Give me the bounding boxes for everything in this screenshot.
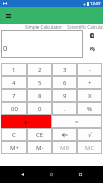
button[interactable]: M+ — [1, 141, 27, 154]
staticText: 5 — [38, 79, 42, 87]
button[interactable]: Backspace — [52, 128, 77, 141]
staticText: - — [89, 66, 91, 74]
staticText: M- — [36, 144, 44, 152]
staticText: M+ — [10, 144, 19, 152]
staticText: + — [23, 116, 29, 128]
button[interactable]: Home — [37, 166, 66, 183]
staticText: 0 — [3, 43, 8, 53]
button[interactable]: Scientific Calculator — [67, 24, 103, 30]
staticText: 7 — [12, 92, 16, 100]
staticText: 2 — [38, 66, 42, 74]
button[interactable]: 1 — [1, 63, 27, 76]
staticText: 00 — [11, 105, 18, 113]
button[interactable]: MC — [77, 141, 102, 154]
staticText: MR — [60, 144, 70, 152]
button[interactable]: + — [77, 76, 102, 89]
staticText: MC — [85, 144, 95, 152]
staticText: % — [87, 105, 92, 113]
staticText: 0 — [38, 105, 42, 113]
button[interactable]: C — [1, 128, 27, 141]
button[interactable]: X — [77, 89, 102, 102]
staticText: 3 — [63, 66, 67, 74]
button[interactable]: M- — [27, 141, 52, 154]
button[interactable]: √ — [77, 128, 102, 141]
staticText: = — [75, 118, 79, 126]
staticText: C — [12, 131, 16, 139]
button[interactable]: MR — [52, 141, 77, 154]
button[interactable]: . — [52, 102, 77, 115]
button[interactable]: 3 — [52, 63, 77, 76]
button[interactable]: CE — [27, 128, 52, 141]
button[interactable]: 6 — [52, 76, 77, 89]
button[interactable]: % — [77, 102, 102, 115]
staticText: 9 — [63, 92, 67, 100]
staticText: 4 — [12, 79, 16, 87]
staticText: . — [64, 105, 66, 113]
button[interactable]: 2 — [27, 63, 52, 76]
button[interactable]: History — [86, 43, 98, 55]
button[interactable]: 5 — [27, 76, 52, 89]
button[interactable]: Back — [8, 166, 37, 183]
button[interactable]: 9 — [52, 89, 77, 102]
button[interactable]: 8 — [27, 89, 52, 102]
button[interactable]: = — [51, 115, 102, 128]
staticText: Simple Calculator — [25, 24, 62, 30]
button[interactable]: 00 — [1, 102, 27, 115]
button[interactable]: 4 — [1, 76, 27, 89]
button[interactable]: Simple Calculator — [19, 24, 67, 30]
staticText: √ — [88, 131, 92, 138]
staticText: X — [88, 92, 92, 100]
staticText: + — [88, 79, 92, 87]
button[interactable]: Open navigation menu — [1, 9, 15, 23]
staticText: 8 — [38, 92, 42, 100]
button[interactable]: 0 — [27, 102, 52, 115]
button[interactable]: Recent apps — [66, 166, 95, 183]
button[interactable]: 7 — [1, 89, 27, 102]
staticText: 6 — [63, 79, 67, 87]
staticText: 1 — [12, 66, 16, 74]
button[interactable]: 0 — [1, 30, 83, 58]
staticText: 12:07 — [90, 1, 101, 7]
button[interactable]: + — [1, 115, 51, 128]
button[interactable]: - — [77, 63, 102, 76]
staticText: Scientific Calculator — [67, 24, 103, 30]
staticText: CE — [36, 131, 44, 139]
button[interactable]: Copy result — [86, 29, 98, 41]
